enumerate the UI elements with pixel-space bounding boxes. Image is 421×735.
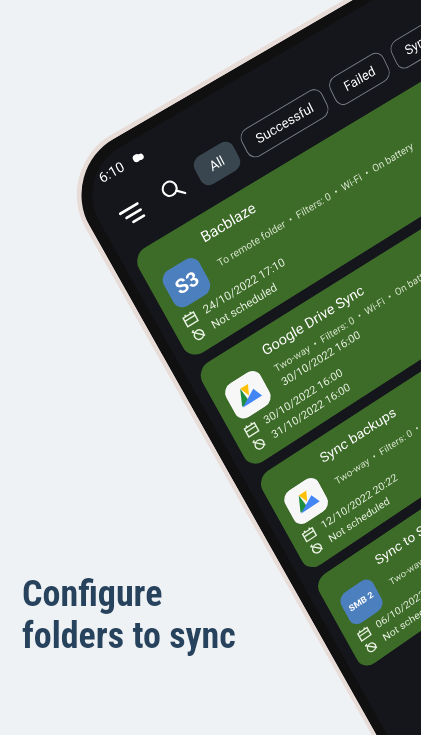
staticText: Sync to SMB: [372, 510, 421, 568]
staticText: 06/10/2022 10:00: [373, 571, 421, 630]
staticText: S3: [171, 266, 203, 299]
staticText: To remote folder • Filters: 0 • Wi-Fi • …: [215, 140, 415, 269]
button[interactable]: Sort: [105, 187, 158, 242]
button[interactable]: Sync to SMB: [313, 368, 421, 671]
button[interactable]: Sync errors: [387, 0, 421, 72]
staticText: Google Drive Sync: [259, 281, 367, 359]
staticText: folders to sync: [22, 615, 236, 657]
staticText: 30/10/2022 16:00: [261, 365, 345, 426]
staticText: Configure: [22, 573, 163, 615]
staticText: 12/10/2022 20:22: [319, 471, 399, 531]
button[interactable]: Google Drive Sync: [195, 158, 421, 469]
button[interactable]: Sync backups: [256, 266, 421, 573]
staticText: 24/10/2022 17:10: [200, 255, 287, 316]
button[interactable]: Search: [147, 163, 199, 217]
staticText: Two-way • Filters: 0 • Wi-Fi • On batter…: [333, 376, 421, 487]
button[interactable]: All: [190, 138, 244, 189]
staticText: Not scheduled: [381, 593, 421, 643]
button[interactable]: Bacblaze: [131, 44, 421, 360]
staticText: Sync backups: [317, 403, 399, 466]
staticText: Failed: [341, 63, 378, 95]
staticText: Bacblaze: [197, 198, 259, 246]
staticText: 6:10: [96, 158, 128, 186]
staticText: Successful: [253, 100, 316, 147]
staticText: SMB 2: [347, 589, 376, 614]
button[interactable]: Failed: [326, 49, 393, 109]
staticText: Sync errors: [402, 12, 421, 58]
button[interactable]: Successful: [237, 85, 332, 161]
staticText: Not scheduled: [209, 280, 279, 331]
staticText: Not scheduled: [326, 494, 392, 544]
staticText: 30/10/2022 16:00: [279, 328, 362, 388]
staticText: All: [207, 152, 228, 175]
staticText: Two-way • Filters: 0 • Wi-Fi • On batter…: [387, 477, 421, 587]
staticText: 31/10/2022 16:00: [269, 380, 352, 441]
staticText: Two-way • Filters: 0 • Wi-Fi • On batter…: [272, 263, 421, 374]
